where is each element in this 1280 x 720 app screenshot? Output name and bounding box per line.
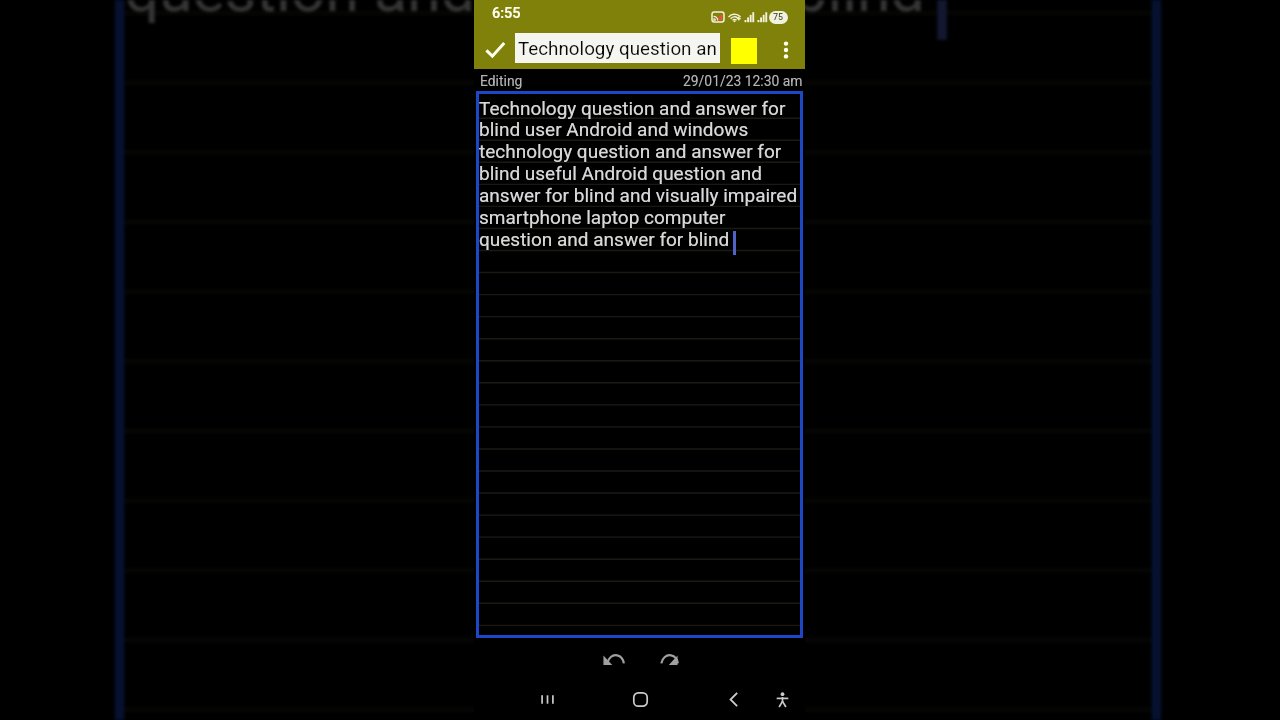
button[interactable]: Accessibility bbox=[762, 677, 802, 720]
button[interactable]: Technology question and answer for blind… bbox=[476, 91, 803, 638]
button[interactable]: Technology question an bbox=[515, 33, 720, 63]
button[interactable]: Recent apps bbox=[524, 677, 570, 720]
button[interactable]: Home bbox=[617, 677, 663, 720]
button[interactable]: More options bbox=[766, 26, 805, 69]
button[interactable]: Technology question and answer for blind… bbox=[115, 0, 1161, 720]
staticText: 6:55 bbox=[492, 5, 521, 22]
staticText: Technology question an bbox=[518, 38, 717, 60]
staticText: Technology question and answer for blind… bbox=[124, 0, 1152, 27]
staticText: 75 bbox=[773, 12, 784, 23]
staticText: 29/01/23 12:30 am bbox=[683, 73, 803, 89]
button[interactable]: Back bbox=[710, 677, 756, 720]
staticText: Editing bbox=[480, 73, 523, 89]
staticText: Technology question and answer for blind… bbox=[479, 97, 800, 251]
button[interactable]: Undo bbox=[595, 644, 631, 676]
button[interactable]: Redo bbox=[649, 644, 685, 676]
button[interactable]: Save note bbox=[474, 26, 515, 69]
